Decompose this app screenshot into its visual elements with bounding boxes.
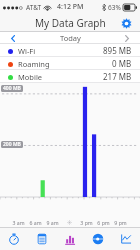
staticText: 3 pm (80, 219, 93, 226)
button[interactable]: Settings (119, 16, 133, 30)
staticText: 4:12 PM (57, 2, 84, 12)
staticText: 0 MB (112, 58, 132, 69)
staticText: 9 pm (114, 219, 127, 226)
staticText: 400 MB (3, 85, 21, 92)
staticText: Mobile (18, 72, 43, 82)
button[interactable]: Trend (112, 228, 140, 250)
staticText: Today (60, 33, 81, 43)
staticText: Wi-Fi (18, 46, 36, 56)
staticText: AT&T (26, 3, 42, 12)
button[interactable]: Wi-Fi (0, 44, 140, 57)
staticText: 200 MB (3, 141, 21, 148)
staticText: 3 am (12, 219, 25, 226)
button[interactable]: Log (28, 228, 56, 250)
staticText: 6 pm (97, 219, 110, 226)
staticText: 217 MB (103, 71, 132, 82)
button[interactable]: Previous day (0, 32, 26, 44)
button[interactable]: Info (84, 228, 112, 250)
staticText: 895 MB (103, 45, 132, 56)
staticText: My Data Graph (35, 16, 106, 30)
staticText: Roaming (18, 59, 50, 69)
button[interactable]: Usage (0, 228, 28, 250)
staticText: 63% (108, 3, 121, 12)
button[interactable]: Graph (56, 228, 84, 250)
button[interactable]: Roaming (0, 57, 140, 70)
staticText: 6 am (29, 219, 42, 226)
button[interactable]: Mobile (0, 70, 140, 83)
button[interactable]: Next day (114, 32, 140, 44)
staticText: 9 am (46, 219, 59, 226)
